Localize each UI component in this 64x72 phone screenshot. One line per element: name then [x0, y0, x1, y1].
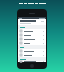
button[interactable] [18, 37, 46, 41]
button[interactable] [18, 29, 46, 33]
button[interactable] [18, 33, 46, 37]
button[interactable] [18, 41, 46, 45]
button[interactable] [18, 53, 46, 57]
button[interactable] [18, 19, 46, 25]
button[interactable]: Home [30, 64, 34, 68]
button[interactable] [18, 61, 46, 62]
button[interactable] [18, 49, 46, 53]
